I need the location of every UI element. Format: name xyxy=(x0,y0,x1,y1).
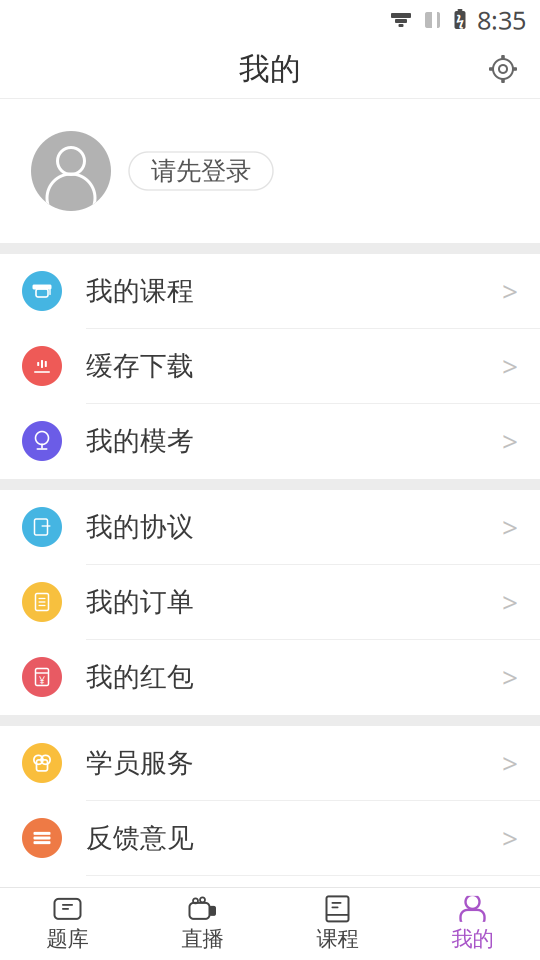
button[interactable]: 直播 xyxy=(135,888,270,960)
button[interactable]: Settings xyxy=(479,45,527,93)
staticText: > xyxy=(502,422,518,460)
button[interactable]: ¥ xyxy=(0,640,540,715)
staticText: 8:35 xyxy=(477,3,526,37)
staticText: 我的红包 xyxy=(86,661,194,693)
staticText: 缓存下载 xyxy=(86,350,194,382)
staticText: 请先登录 xyxy=(151,155,251,186)
button[interactable]: 学员服务 xyxy=(0,726,540,801)
button[interactable]: 我的模考 xyxy=(0,404,540,479)
button[interactable]: 我的 xyxy=(405,888,540,960)
staticText: 我的 xyxy=(451,926,493,952)
button[interactable]: 反馈意见 xyxy=(0,801,540,876)
staticText: > xyxy=(502,744,518,782)
button[interactable]: 题库 xyxy=(0,888,135,960)
staticText: 我的订单 xyxy=(86,586,194,618)
staticText: 我的课程 xyxy=(86,275,194,307)
staticText: 直播 xyxy=(181,926,223,952)
button[interactable]: 课程 xyxy=(270,888,405,960)
staticText: ¥ xyxy=(39,673,45,687)
staticText: 我的模考 xyxy=(86,425,194,457)
staticText: 反馈意见 xyxy=(86,822,194,854)
staticText: 我的协议 xyxy=(86,511,194,543)
staticText: > xyxy=(502,819,518,857)
staticText: > xyxy=(502,658,518,696)
staticText: 学员服务 xyxy=(86,747,194,779)
button[interactable]: 我的协议 xyxy=(0,490,540,565)
button[interactable]: 我的课程 xyxy=(0,254,540,329)
staticText: 课程 xyxy=(316,926,358,952)
staticText: 我的 xyxy=(239,50,301,88)
staticText: 题库 xyxy=(46,926,88,952)
button[interactable]: 请先登录 xyxy=(129,152,273,190)
button[interactable]: 我的订单 xyxy=(0,565,540,640)
staticText: > xyxy=(502,508,518,546)
staticText: > xyxy=(502,583,518,621)
staticText: ϟ xyxy=(456,10,464,30)
staticText: > xyxy=(502,347,518,385)
staticText: > xyxy=(502,272,518,310)
button[interactable]: 缓存下载 xyxy=(0,329,540,404)
